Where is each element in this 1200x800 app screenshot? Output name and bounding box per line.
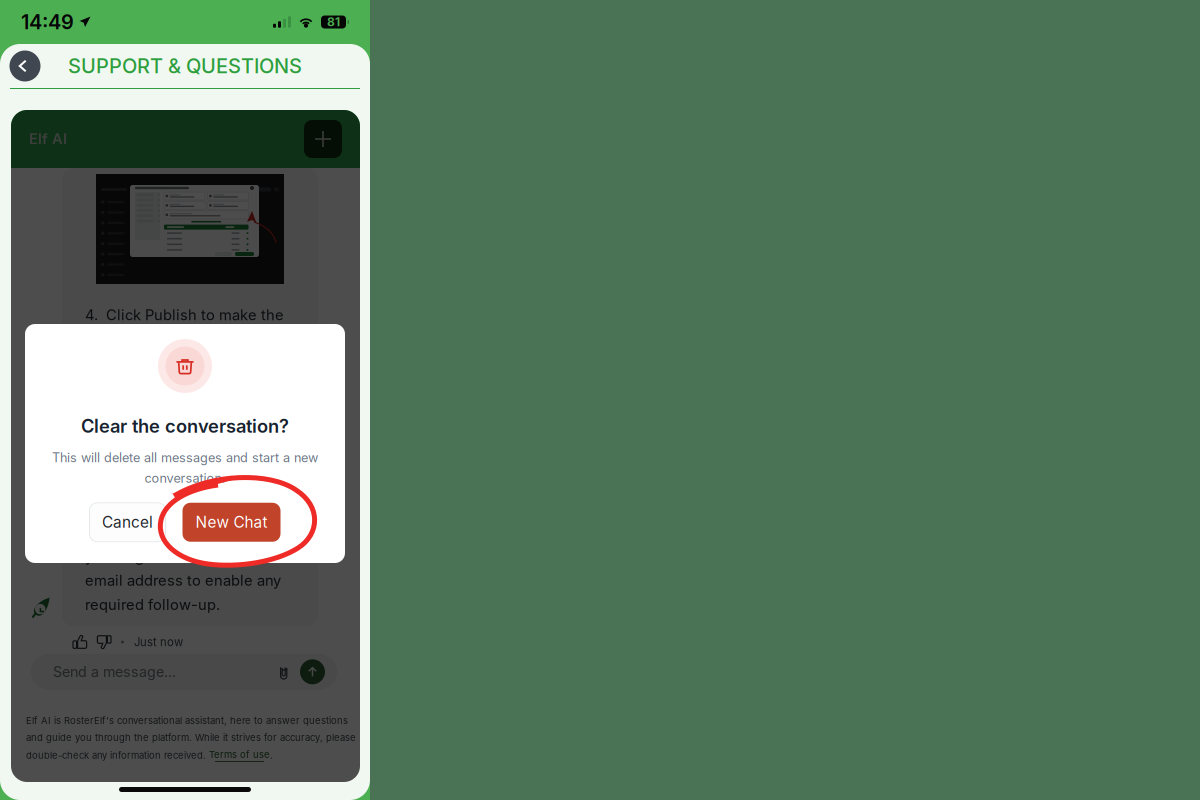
staticText: This will delete all messages and start … <box>52 450 318 465</box>
button[interactable]: New chat <box>304 120 342 158</box>
staticText: Terms of use <box>209 749 270 760</box>
staticText: 4. Click Publish to make the <box>85 306 284 324</box>
button[interactable]: Cancel <box>89 503 165 542</box>
staticText: your registered RosterElf <box>85 547 261 565</box>
staticText: double-check any information received. <box>26 750 209 761</box>
staticText: Elf AI <box>29 130 67 148</box>
button[interactable]: Bad response <box>96 634 111 649</box>
staticText: 14:49 <box>21 10 74 34</box>
staticText: contact our support team with <box>85 523 297 541</box>
staticText: Cancel <box>102 513 153 532</box>
staticText: shift visible to your staff. <box>85 330 259 348</box>
button[interactable]: Back <box>3 44 47 88</box>
staticText: If you need further help, please <box>85 499 307 517</box>
staticText: email address to enable any <box>85 572 281 589</box>
button[interactable]: New Chat <box>182 503 280 542</box>
staticText: Clear the conversation? <box>81 415 289 437</box>
staticText: 81 <box>327 15 340 29</box>
button[interactable]: Terms of use <box>209 749 270 762</box>
button[interactable]: Send <box>290 659 325 684</box>
staticText: . <box>270 750 273 761</box>
button[interactable]: Attach file <box>279 663 290 680</box>
staticText: Once published, your team will <box>85 378 303 396</box>
staticText: new shift and can view it in <box>85 427 275 444</box>
staticText: New Chat <box>195 513 267 532</box>
button[interactable]: Good response <box>73 634 88 649</box>
staticText: required follow-up. <box>85 596 220 613</box>
staticText: Elf AI is RosterElf's conversational ass… <box>26 715 348 726</box>
staticText: Just now <box>134 635 183 649</box>
staticText: Send a message... <box>53 663 176 680</box>
staticText: conversation. <box>144 470 225 486</box>
staticText: receive a notification about the <box>85 403 304 420</box>
staticText: SUPPORT & QUESTIONS <box>68 54 302 78</box>
staticText: their roster. <box>85 451 167 469</box>
staticText: and guide you through the platform. Whil… <box>26 732 356 743</box>
